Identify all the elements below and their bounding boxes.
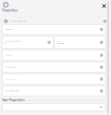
button[interactable]: Message Expiry Interval	[2, 36, 53, 48]
button[interactable]: Payload Format Indicator info	[103, 19, 107, 23]
staticText: Content Type	[4, 29, 13, 30]
button[interactable]: Topic Alias	[2, 50, 105, 60]
button[interactable]: Content Type	[2, 24, 105, 34]
staticText: Seconds	[57, 42, 64, 44]
staticText: Response Topic	[4, 78, 16, 80]
staticText: Topic Alias	[4, 54, 11, 56]
staticText: Unit	[57, 40, 59, 42]
button[interactable]: Settings	[2, 1, 9, 8]
staticText: Properties	[2, 9, 17, 12]
staticText: Message Expiry Interval	[4, 40, 21, 42]
staticText: Correlation Data	[4, 66, 15, 68]
button[interactable]: Subscription Identifier	[2, 86, 105, 96]
button[interactable]: Remove user property	[99, 107, 103, 108]
staticText: User Properties	[2, 98, 24, 102]
button[interactable]: Response Topic	[2, 74, 105, 84]
staticText: Subscription Identifier	[4, 90, 19, 92]
button[interactable]: Correlation Data	[2, 62, 105, 72]
staticText: Payload Format Indicator	[10, 20, 27, 22]
button[interactable]: Unit	[55, 36, 105, 48]
button[interactable]: Payload Format Indicator toggle	[4, 19, 8, 23]
staticText: 60	[4, 42, 6, 44]
button[interactable]: Close	[101, 3, 107, 9]
